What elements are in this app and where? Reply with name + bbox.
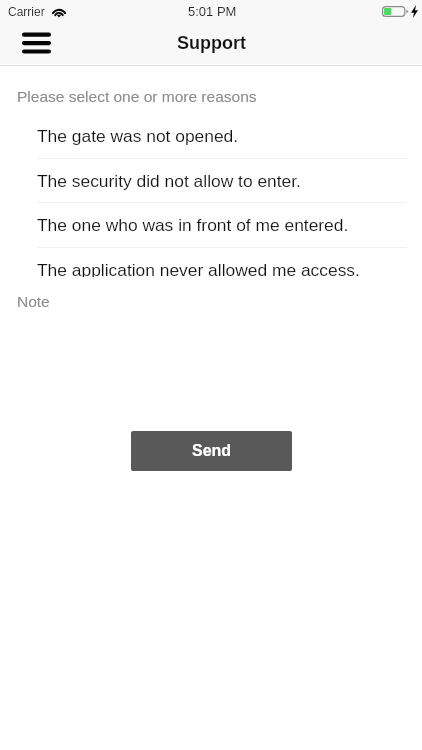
button[interactable]: Send [131, 431, 292, 471]
button[interactable]: The security did not allow to enter. [0, 158, 422, 203]
button[interactable]: The one who was in front of me entered. [0, 202, 422, 247]
staticText: Note [17, 293, 50, 310]
button[interactable]: The application never allowed me access. [0, 247, 422, 277]
staticText: Send [192, 442, 232, 460]
button[interactable]: Menu [15, 22, 57, 64]
staticText: Support [177, 33, 246, 53]
staticText: Carrier [8, 5, 45, 18]
staticText: The application never allowed me access. [37, 260, 360, 277]
staticText: Please select one or more reasons [17, 88, 257, 105]
button[interactable]: The gate was not opened. [0, 113, 422, 158]
staticText: 5:01 PM [188, 4, 237, 19]
staticText: The gate was not opened. [37, 126, 239, 145]
staticText: The one who was in front of me entered. [37, 215, 349, 234]
staticText: The security did not allow to enter. [37, 171, 301, 190]
